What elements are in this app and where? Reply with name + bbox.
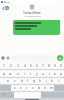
staticText: r: [24, 72, 26, 76]
staticText: 8: [48, 64, 50, 68]
staticText: .: [44, 93, 45, 97]
button[interactable]: y: [34, 70, 40, 77]
button[interactable]: f: [25, 78, 31, 84]
staticText: b: [38, 86, 40, 90]
button[interactable]: 6: [34, 62, 40, 69]
button[interactable]: v: [30, 85, 36, 91]
staticText: 3: [17, 64, 19, 68]
button[interactable]: r: [21, 70, 28, 77]
staticText: 0: [60, 64, 62, 68]
staticText: y: [36, 72, 38, 76]
staticText: m: [50, 86, 53, 90]
button[interactable]: u: [40, 70, 46, 77]
button[interactable]: 1: [0, 62, 7, 69]
button[interactable]: o: [52, 70, 58, 77]
staticText: 4: [24, 64, 26, 68]
button[interactable]: w: [7, 70, 14, 77]
staticText: x: [20, 86, 22, 90]
button[interactable]: Attach: [6, 56, 10, 60]
button[interactable]: m: [48, 85, 54, 91]
button[interactable]: z: [11, 85, 18, 91]
button[interactable]: 3: [14, 62, 21, 69]
staticText: p: [60, 72, 62, 76]
button[interactable]: p: [58, 70, 64, 77]
staticText: n: [44, 86, 46, 90]
button[interactable]: [0, 78, 4, 84]
button[interactable]: n: [42, 85, 48, 91]
button[interactable]: ?: [0, 92, 7, 98]
staticText: +1 650 555 0123: [24, 15, 41, 18]
staticText: ?: [3, 93, 5, 97]
button[interactable]: q: [0, 70, 7, 77]
staticText: l: [58, 79, 59, 83]
button[interactable]: Contact avatar: [5, 6, 9, 10]
button[interactable]: Emoji: [1, 56, 5, 60]
button[interactable]: 5: [28, 62, 34, 69]
button[interactable]: k: [49, 78, 55, 84]
button[interactable]: 2: [7, 62, 14, 69]
staticText: i: [49, 72, 50, 76]
button[interactable]: 8: [46, 62, 52, 69]
staticText: 5: [30, 64, 32, 68]
staticText: h: [39, 79, 41, 83]
button[interactable]: 0: [58, 62, 64, 69]
staticText: 9: [54, 64, 56, 68]
button[interactable]: [13, 20, 60, 35]
button[interactable]: g: [31, 78, 37, 84]
button[interactable]: c: [24, 85, 30, 91]
button[interactable]: 9: [52, 62, 58, 69]
staticText: 2: [10, 64, 12, 68]
staticText: o: [54, 72, 56, 76]
staticText: e: [17, 72, 19, 76]
button[interactable]: i: [46, 70, 52, 77]
staticText: j: [46, 79, 47, 83]
staticText: f: [27, 79, 29, 83]
button[interactable]: 7: [40, 62, 46, 69]
staticText: 7: [42, 64, 44, 68]
button[interactable]: b: [36, 85, 42, 91]
staticText: u: [42, 72, 44, 76]
staticText: z: [14, 86, 16, 90]
staticText: a: [7, 79, 9, 83]
staticText: Contact Name: [23, 11, 41, 15]
button[interactable]: ,: [7, 92, 14, 98]
button[interactable]: a: [4, 78, 11, 84]
button[interactable]: l: [55, 78, 61, 84]
staticText: Tap here for contact info: [21, 19, 44, 22]
button[interactable]: d: [18, 78, 25, 84]
staticText: d: [21, 79, 23, 83]
staticText: c: [26, 86, 28, 90]
staticText: q: [3, 72, 5, 76]
button[interactable]: [61, 78, 64, 84]
button[interactable]: x: [18, 85, 24, 91]
staticText: w: [9, 72, 12, 76]
button[interactable]: Send: [57, 55, 63, 61]
staticText: g: [33, 79, 35, 83]
button[interactable]: Back: [1, 6, 5, 10]
staticText: t: [30, 72, 32, 76]
staticText: s: [14, 79, 16, 83]
button[interactable]: s: [11, 78, 18, 84]
staticText: v: [32, 86, 34, 90]
button[interactable]: h: [37, 78, 43, 84]
button[interactable]: 4: [21, 62, 28, 69]
button[interactable]: j: [43, 78, 49, 84]
staticText: ,: [10, 93, 11, 97]
staticText: 6: [36, 64, 38, 68]
staticText: k: [51, 79, 53, 83]
button[interactable]: e: [14, 70, 21, 77]
staticText: 1: [3, 64, 5, 68]
button[interactable]: t: [28, 70, 34, 77]
